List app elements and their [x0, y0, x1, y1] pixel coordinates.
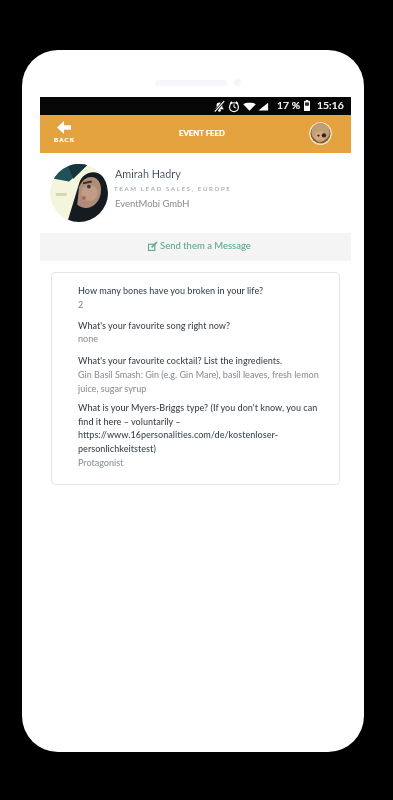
staticText: EVENT FEED: [179, 128, 225, 137]
staticText: EventMobi GmbH: [115, 198, 190, 209]
button[interactable]: Amirah Hadry: [40, 153, 351, 233]
staticText: What is your Myers-Briggs type? (If you …: [78, 402, 318, 413]
staticText: TEAM LEAD SALES, EUROPE: [114, 185, 232, 192]
staticText: Protagonist: [78, 457, 124, 468]
button[interactable]: Open profile: [309, 122, 332, 145]
staticText: juice, sugar syrup: [78, 383, 147, 394]
staticText: 2: [78, 299, 84, 310]
staticText: How many bones have you broken in your l…: [78, 285, 264, 296]
staticText: personlichkeitstest): [78, 443, 156, 454]
staticText: 17 %: [277, 99, 301, 111]
staticText: Gin Basil Smash: Gin (e.g. Gin Mare), ba…: [78, 369, 319, 380]
staticText: What's your favourite cocktail? List the…: [78, 355, 283, 366]
button[interactable]: Send them a Message: [40, 233, 351, 261]
staticText: What's your favourite song right now?: [78, 320, 231, 331]
staticText: BACK: [54, 136, 76, 143]
staticText: https://www.16personalities.com/de/koste…: [78, 429, 279, 440]
staticText: Send them a Message: [160, 240, 251, 251]
staticText: Amirah Hadry: [115, 167, 181, 180]
staticText: find it here – voluntarily –: [78, 416, 181, 427]
button[interactable]: Back: [46, 115, 86, 153]
staticText: none: [78, 333, 99, 344]
staticText: 15:16: [317, 99, 344, 111]
